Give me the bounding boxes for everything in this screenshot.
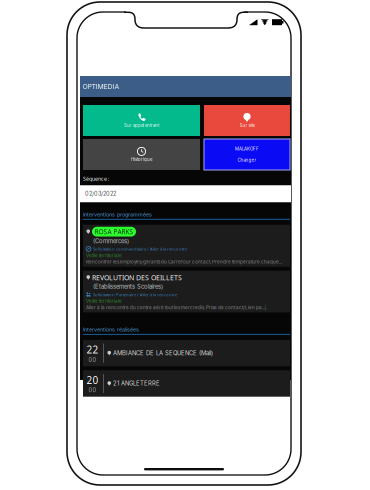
staticText: OPTIMEDIA <box>82 82 119 91</box>
staticText: Sollicitation commanditaire / Aller à la… <box>93 246 187 252</box>
staticText: 00 <box>88 356 96 363</box>
button[interactable]: ROSA PARKS <box>83 225 290 267</box>
button[interactable]: Sur appel entrant <box>83 105 200 136</box>
staticText: 00 <box>88 387 96 394</box>
staticText: Rencontrer les employés/gérants du Carre… <box>86 259 282 265</box>
staticText: Historique <box>131 157 152 162</box>
staticText: Aller à la rencontre du centre aéré tout… <box>86 305 267 310</box>
button[interactable]: MALAKOFF <box>204 139 290 170</box>
staticText: Sur appel entrant <box>124 123 159 128</box>
staticText: 21 ANGLETERRE <box>113 380 160 387</box>
staticText: Interventions programmées <box>83 211 152 218</box>
staticText: Sollicitation Partenaire / Aller à la re… <box>93 292 177 297</box>
staticText: Veille territoriale <box>86 253 122 258</box>
staticText: Veille territoriale <box>86 298 122 304</box>
staticText: MALAKOFF <box>235 146 259 151</box>
staticText: 20 <box>86 373 98 387</box>
staticText: Sur site <box>239 123 254 128</box>
staticText: Séquence : <box>83 175 109 182</box>
button[interactable]: REVOLUTION DES OEILLETS <box>83 271 290 312</box>
button[interactable]: Historique <box>83 139 200 170</box>
button[interactable]: 22 <box>83 340 290 366</box>
staticText: (Etablissements Scolaires) <box>93 283 163 290</box>
staticText: ROSA PARKS <box>94 227 133 236</box>
staticText: REVOLUTION DES OEILLETS <box>92 273 182 282</box>
staticText: (Commerces) <box>93 237 129 245</box>
staticText: AMBIANCE DE LA SEQUENCE (Mail) <box>113 350 213 357</box>
staticText: 02/03/2022 <box>85 190 116 197</box>
staticText: 22 <box>86 343 98 356</box>
staticText: Changer <box>237 157 256 163</box>
staticText: Interventions réalisées <box>83 326 139 333</box>
button[interactable]: 20 <box>83 370 290 397</box>
button[interactable]: Sur site <box>204 105 290 136</box>
